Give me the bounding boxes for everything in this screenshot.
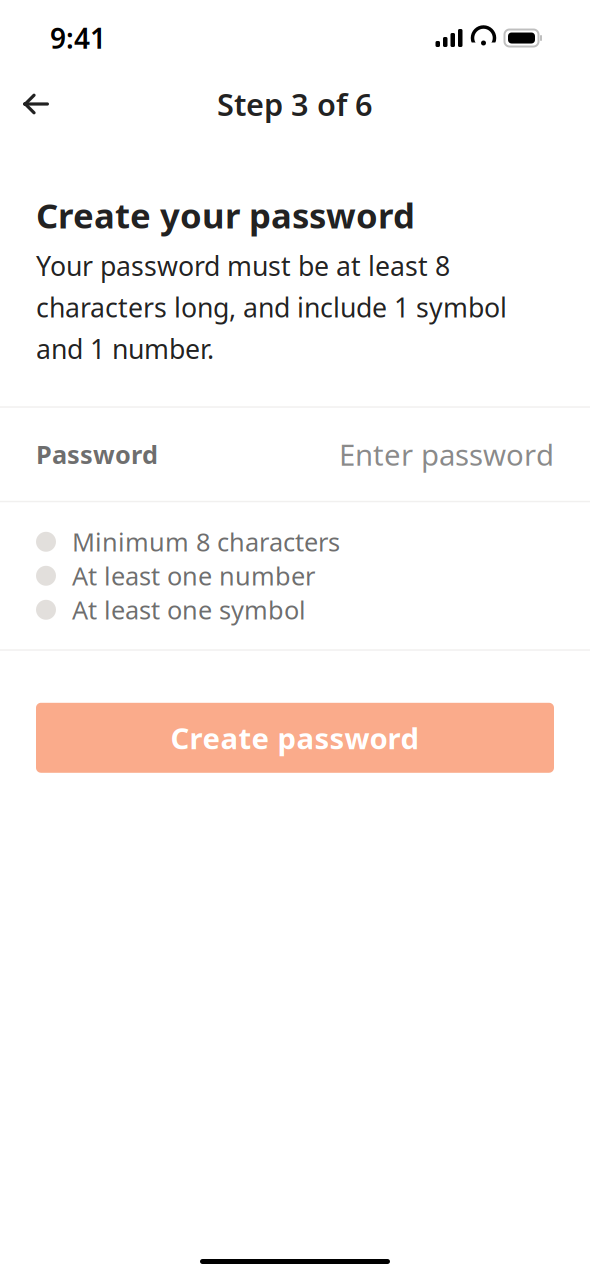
staticText: Password <box>36 437 158 471</box>
button[interactable]: Password <box>36 408 554 501</box>
staticText: Create password <box>170 718 419 757</box>
staticText: At least one symbol <box>72 593 306 627</box>
button[interactable]: Back <box>8 76 64 132</box>
staticText: 9:41 <box>50 19 106 57</box>
staticText: At least one number <box>72 559 315 593</box>
staticText: Step 3 of 6 <box>217 84 373 124</box>
staticText: Your password must be at least 8 charact… <box>36 248 507 366</box>
staticText: Enter password <box>339 435 554 474</box>
staticText: Minimum 8 characters <box>72 525 340 559</box>
staticText: Create your password <box>36 192 415 238</box>
button[interactable]: Create password <box>36 703 554 773</box>
